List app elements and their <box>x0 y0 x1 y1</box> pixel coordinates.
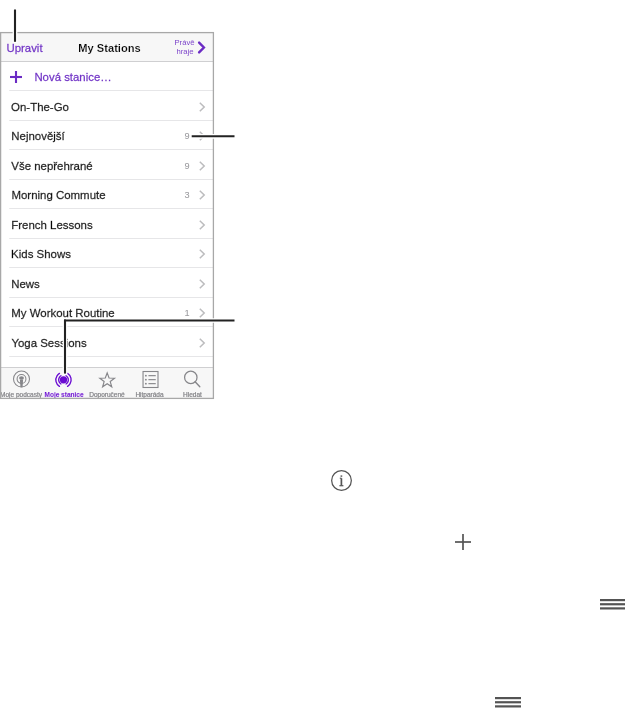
staticText: Upravit <box>6 42 43 55</box>
staticText: Nejnovější <box>11 130 65 143</box>
staticText: Vše nepřehrané <box>11 160 93 173</box>
button[interactable]: Vše nepřehrané <box>0 151 214 180</box>
staticText: Kids Shows <box>11 248 71 261</box>
staticText: Morning Commute <box>11 189 106 202</box>
button[interactable]: Add <box>455 534 471 550</box>
staticText: Kids Shows <box>11 248 71 261</box>
staticText: News <box>11 278 40 291</box>
button[interactable]: Doporučené <box>85 367 128 399</box>
button[interactable]: Moje podcasty <box>0 367 42 399</box>
staticText: Hledat <box>183 391 202 398</box>
button[interactable]: On-The-Go <box>0 92 214 121</box>
button[interactable]: Nejnovější <box>0 121 214 150</box>
staticText: Moje stanice <box>44 391 84 398</box>
button[interactable]: Hitparáda <box>128 367 171 399</box>
staticText: hraje <box>176 47 194 56</box>
button[interactable]: News <box>0 269 214 298</box>
staticText: French Lessons <box>11 219 93 232</box>
staticText: Právě <box>174 38 195 47</box>
staticText: Nejnovější <box>11 130 65 143</box>
staticText: Yoga Sessions <box>11 337 87 350</box>
staticText: Nová stanice… <box>34 71 112 84</box>
staticText: Doporučené <box>89 391 125 398</box>
button[interactable]: Hledat <box>171 367 214 399</box>
staticText: 9 <box>184 161 190 171</box>
staticText: Moje podcasty <box>0 391 42 398</box>
staticText: Hitparáda <box>135 391 164 398</box>
staticText: Yoga Sessions <box>11 337 87 350</box>
staticText: French Lessons <box>11 219 93 232</box>
button[interactable]: French Lessons <box>0 210 214 239</box>
staticText: My Workout Routine <box>11 307 115 320</box>
staticText: On-The-Go <box>11 101 69 114</box>
button[interactable]: Menu <box>495 697 521 708</box>
staticText: My Workout Routine <box>11 307 115 320</box>
staticText: Moje podcasty <box>0 391 42 398</box>
staticText: Moje stanice <box>44 391 84 398</box>
button[interactable]: Menu <box>600 599 625 610</box>
staticText: Upravit <box>6 42 43 55</box>
staticText: Vše nepřehrané <box>11 160 93 173</box>
button[interactable]: Yoga Sessions <box>0 328 214 357</box>
staticText: Hledat <box>183 391 202 398</box>
staticText: 9 <box>184 131 190 141</box>
staticText: Nová stanice… <box>34 71 112 84</box>
button[interactable]: Nová stanice… <box>0 62 214 91</box>
staticText: News <box>11 278 40 291</box>
button[interactable]: My Workout Routine <box>0 298 214 327</box>
button[interactable]: Právě <box>170 32 214 62</box>
staticText: 3 <box>184 190 190 200</box>
staticText: Hitparáda <box>135 391 164 398</box>
button[interactable]: Information <box>331 470 352 491</box>
staticText: Doporučené <box>89 391 125 398</box>
button[interactable]: Morning Commute <box>0 180 214 209</box>
button[interactable]: Kids Shows <box>0 239 214 268</box>
button[interactable]: Upravit <box>0 32 48 62</box>
staticText: Morning Commute <box>11 189 106 202</box>
button[interactable]: Moje stanice <box>42 367 85 399</box>
staticText: My Stations <box>78 42 141 54</box>
staticText: On-The-Go <box>11 101 69 114</box>
staticText: 1 <box>184 308 190 318</box>
